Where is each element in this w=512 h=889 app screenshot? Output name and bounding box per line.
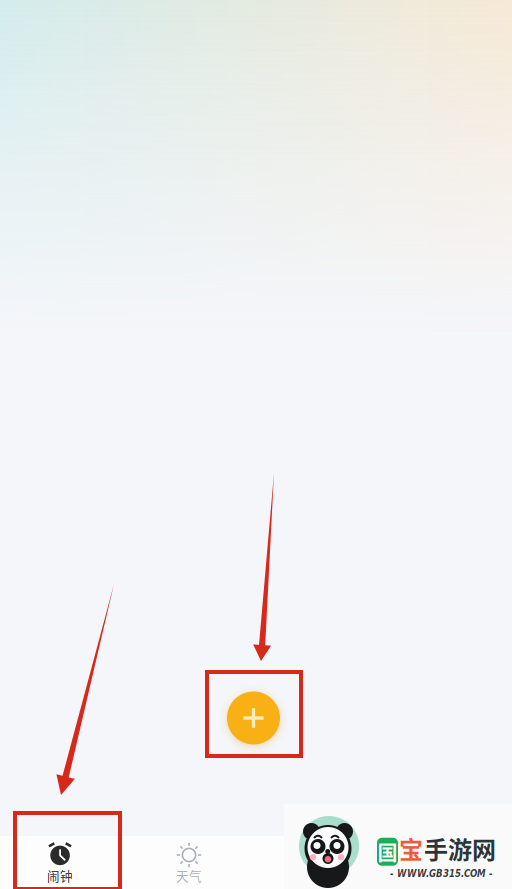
staticText: - WWW.GB315.COM - (390, 868, 493, 879)
button[interactable]: 闹钟 (0, 836, 118, 889)
button[interactable]: 天气 (118, 836, 258, 889)
staticText: 闹钟 (47, 866, 73, 884)
button[interactable]: Add alarm (227, 691, 280, 745)
staticText: 宝 (399, 831, 423, 866)
staticText: 国 (377, 837, 397, 866)
staticText: 天气 (176, 866, 202, 884)
staticText: 手游网 (424, 831, 496, 866)
